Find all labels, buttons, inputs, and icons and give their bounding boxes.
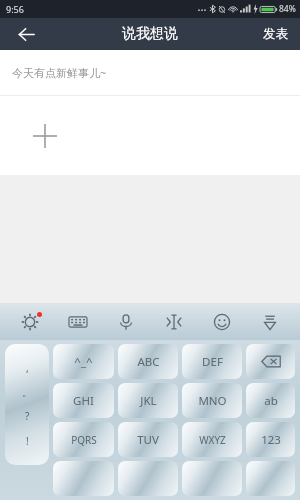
staticText: 9:56 <box>6 3 24 15</box>
staticText: 发表 <box>263 26 288 42</box>
staticText: 123 <box>261 432 281 448</box>
button[interactable] <box>246 461 295 496</box>
button[interactable]: Back <box>0 18 52 50</box>
button[interactable]: ABC <box>118 344 178 379</box>
button[interactable]: Hide keyboard <box>252 306 288 338</box>
button[interactable]: GHI <box>53 383 114 418</box>
staticText: JKL <box>140 393 157 409</box>
button[interactable]: , <box>5 344 49 465</box>
staticText: 84% <box>279 3 296 15</box>
staticText: WXYZ <box>199 433 226 447</box>
staticText: ! <box>26 434 29 448</box>
staticText: MNO <box>198 393 227 409</box>
staticText: ? <box>25 409 30 423</box>
button[interactable]: 发表 <box>251 18 300 50</box>
staticText: DEF <box>202 354 223 370</box>
button[interactable]: Settings <box>12 306 48 338</box>
staticText: 说我想说 <box>122 25 178 43</box>
staticText: TUV <box>137 432 159 448</box>
button[interactable]: MNO <box>182 383 242 418</box>
button[interactable]: ^_^ <box>53 344 114 379</box>
staticText: , <box>26 361 29 375</box>
button[interactable] <box>182 461 242 496</box>
button[interactable]: Keyboard layout <box>60 306 96 338</box>
staticText: ab <box>264 393 278 409</box>
button[interactable]: Add photo <box>24 115 66 157</box>
button[interactable]: PQRS <box>53 422 114 457</box>
button[interactable]: TUV <box>118 422 178 457</box>
button[interactable]: Emoji <box>204 306 240 338</box>
button[interactable]: WXYZ <box>182 422 242 457</box>
staticText: 。 <box>22 386 32 399</box>
button[interactable]: JKL <box>118 383 178 418</box>
button[interactable] <box>53 461 114 496</box>
staticText: ^_^ <box>74 354 93 370</box>
button[interactable] <box>246 344 295 379</box>
staticText: GHI <box>73 393 94 409</box>
staticText: 今天有点新鲜事儿~ <box>12 65 107 80</box>
button[interactable]: Cursor move <box>156 306 192 338</box>
button[interactable] <box>118 461 178 496</box>
button[interactable]: 123 <box>246 422 295 457</box>
staticText: ABC <box>137 354 160 370</box>
button[interactable]: Voice input <box>108 306 144 338</box>
button[interactable]: ab <box>246 383 295 418</box>
button[interactable]: DEF <box>182 344 242 379</box>
staticText: PQRS <box>71 433 97 447</box>
